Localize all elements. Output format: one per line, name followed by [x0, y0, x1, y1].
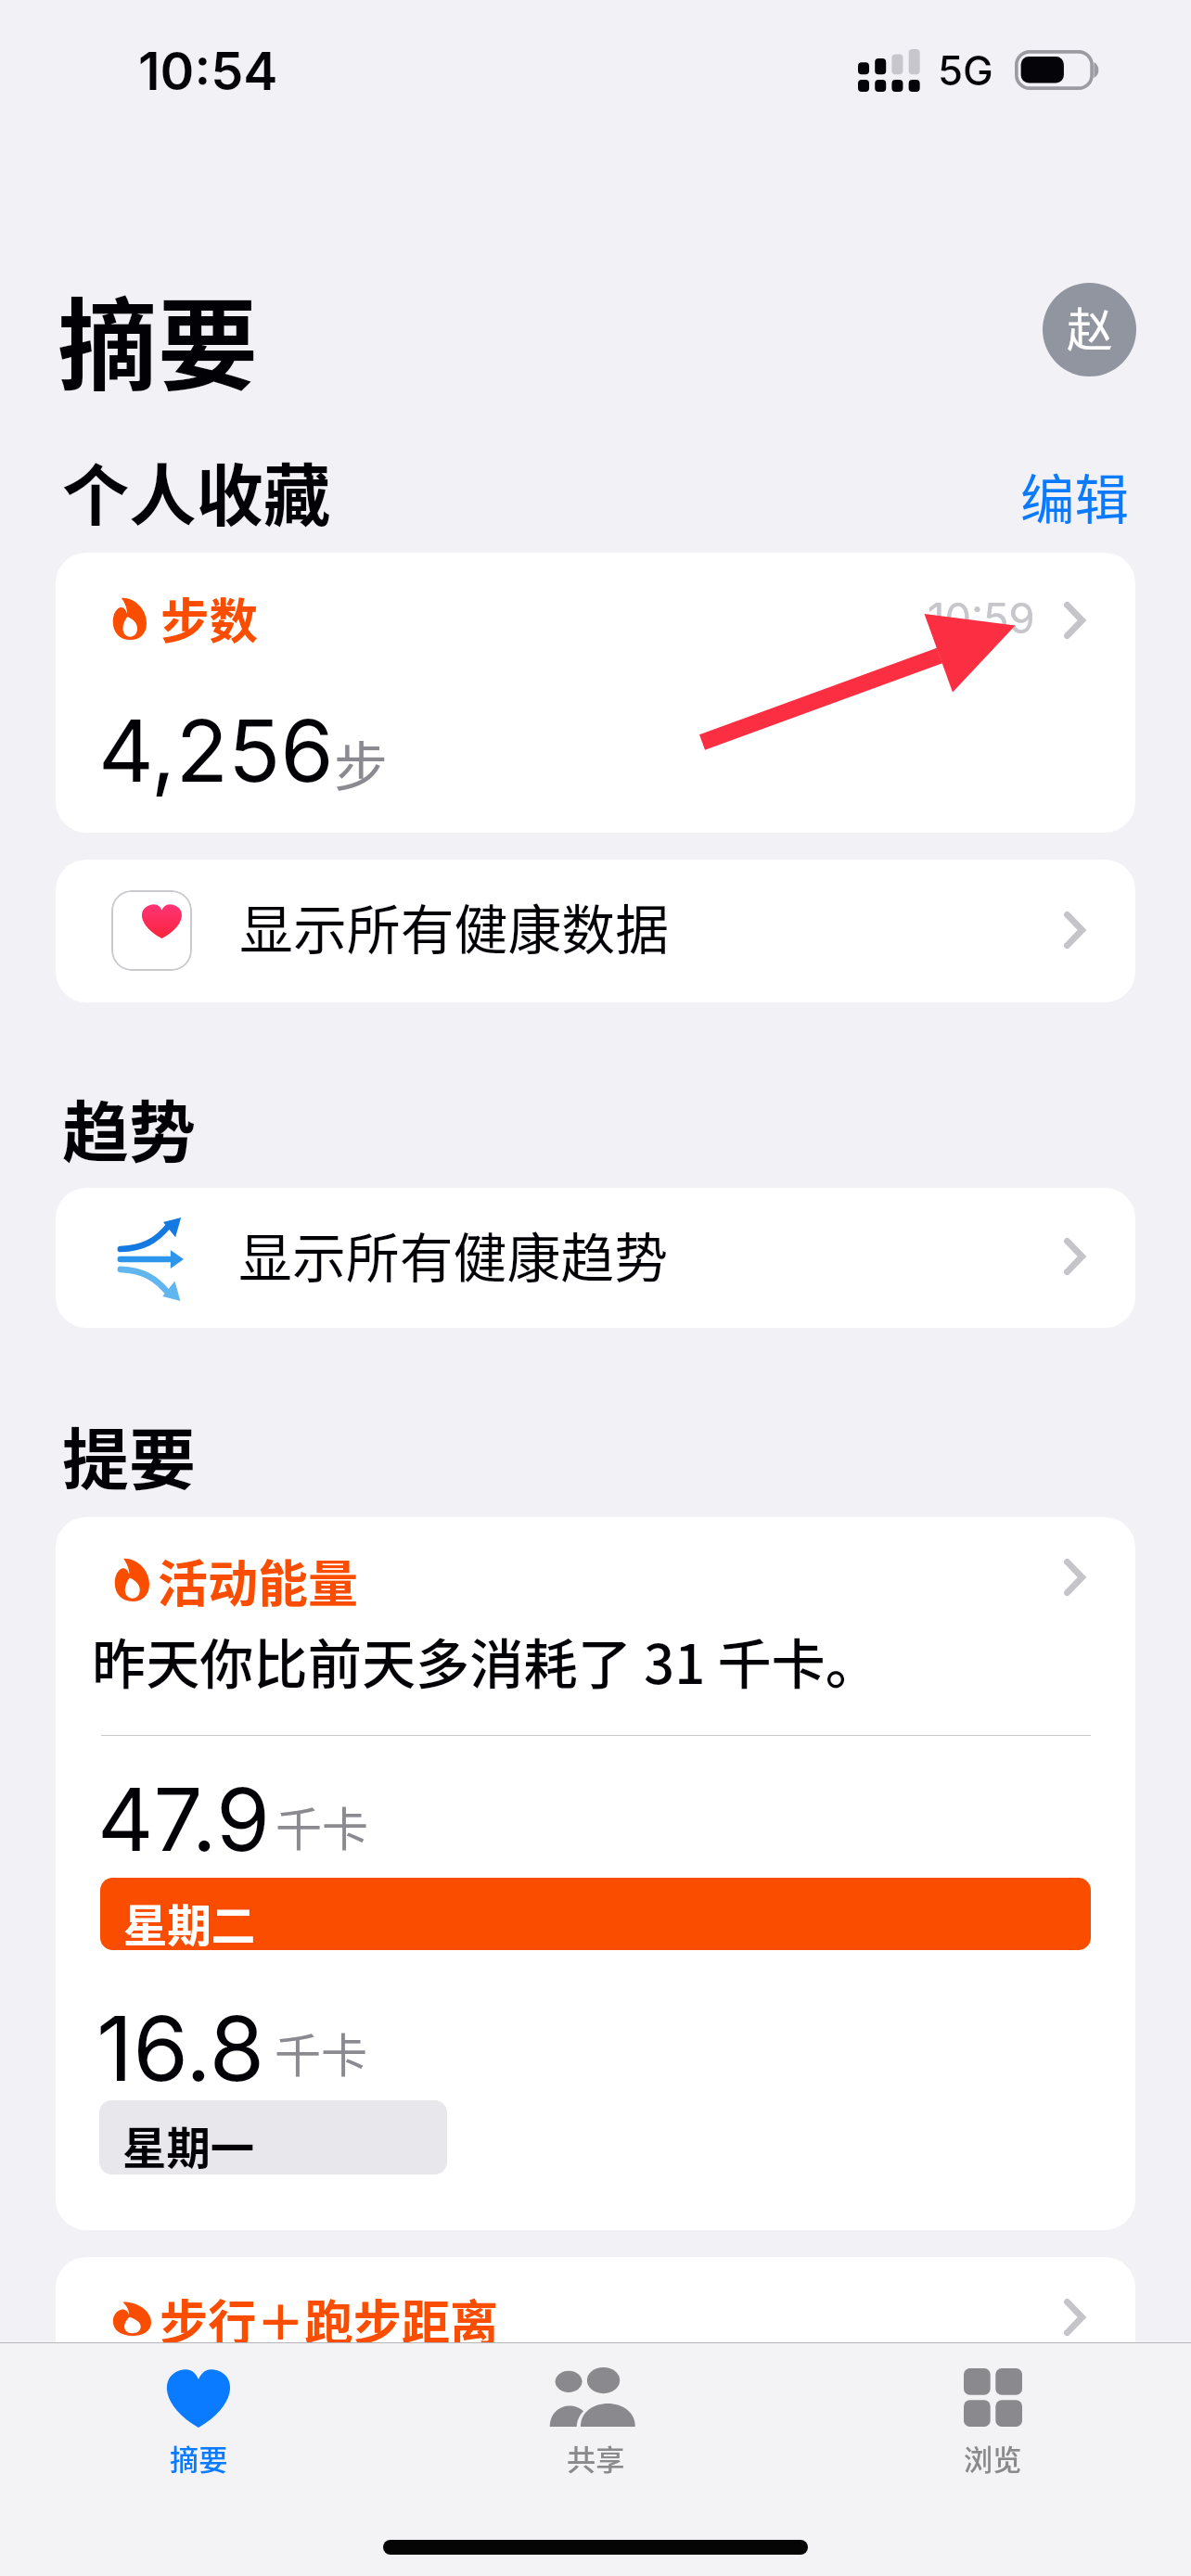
- staticText: 星期二: [123, 1891, 256, 1950]
- staticText: 10:59: [928, 593, 1035, 644]
- staticText: 47.9: [97, 1766, 271, 1871]
- staticText: 星期一: [122, 2113, 255, 2174]
- staticText: 提要: [62, 1406, 197, 1502]
- button[interactable]: 活动能量: [56, 1517, 1135, 2230]
- staticText: 显示所有健康趋势: [238, 1216, 669, 1294]
- staticText: 共享: [567, 2437, 625, 2479]
- staticText: 16.8: [96, 1994, 265, 2102]
- staticText: 10:54: [138, 40, 278, 103]
- staticText: 趋势: [62, 1078, 197, 1175]
- button[interactable]: 编辑: [998, 434, 1152, 557]
- staticText: 个人收藏: [62, 442, 331, 540]
- button[interactable]: Profile: [1043, 283, 1136, 376]
- staticText: 编辑: [1020, 456, 1130, 535]
- staticText: 步数: [160, 582, 259, 653]
- button[interactable]: 显示所有健康数据: [56, 860, 1135, 1002]
- staticText: 步: [334, 724, 388, 802]
- button[interactable]: 显示所有健康趋势: [56, 1188, 1135, 1328]
- staticText: 千卡: [275, 2019, 368, 2086]
- staticText: 赵: [1067, 294, 1113, 361]
- button[interactable]: 步行＋跑步距离: [56, 2257, 1135, 2424]
- staticText: 浏览: [964, 2437, 1022, 2479]
- staticText: 摘要: [170, 2437, 228, 2479]
- staticText: 昨天你比前天多消耗了 31 千卡。: [92, 1621, 879, 1699]
- button[interactable]: 步数: [56, 553, 1135, 833]
- button[interactable]: 浏览: [794, 2343, 1191, 2479]
- staticText: 步行＋跑步距离: [160, 2284, 499, 2354]
- staticText: 活动能量: [158, 1544, 358, 1616]
- button[interactable]: 摘要: [0, 2343, 397, 2479]
- staticText: 4,256: [98, 698, 334, 802]
- staticText: 千卡: [275, 1792, 369, 1860]
- staticText: 显示所有健康数据: [239, 887, 670, 965]
- staticText: 5G: [938, 46, 993, 96]
- button[interactable]: 共享: [397, 2343, 794, 2479]
- staticText: 摘要: [58, 266, 259, 411]
